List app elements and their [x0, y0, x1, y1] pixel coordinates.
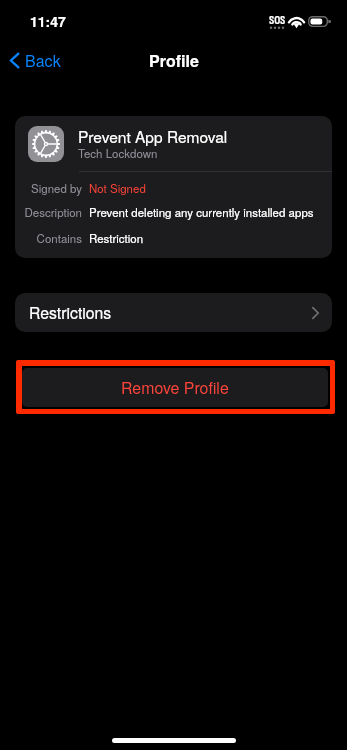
staticText: Description: [24, 204, 82, 220]
staticText: SOS: [269, 14, 286, 28]
staticText: Restriction: [89, 230, 144, 246]
staticText: 11:47: [30, 11, 66, 31]
staticText: Tech Lockdown: [78, 145, 158, 161]
button[interactable]: Remove Profile: [22, 368, 328, 407]
staticText: Signed by: [31, 180, 82, 196]
staticText: Prevent App Removal: [78, 125, 228, 147]
staticText: Restrictions: [29, 301, 112, 324]
staticText: Back: [25, 49, 61, 72]
button[interactable]: Back: [3, 45, 71, 76]
staticText: Contains: [36, 230, 82, 246]
button[interactable]: Restrictions: [15, 293, 332, 332]
staticText: Profile: [149, 49, 199, 72]
staticText: Remove Profile: [121, 376, 229, 399]
staticText: Prevent deleting any currently installed…: [89, 204, 314, 220]
staticText: Not Signed: [89, 180, 146, 196]
